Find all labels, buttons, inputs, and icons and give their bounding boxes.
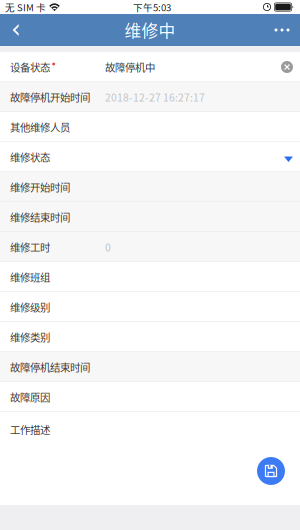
staticText: 维修结束时间 [10,209,70,225]
button[interactable]: 故障原因 [0,382,300,412]
staticText: 故障停机开始时间 [10,89,90,105]
button[interactable]: 故障停机结束时间 [0,352,300,382]
staticText: 故障停机结束时间 [10,359,90,375]
button[interactable]: 维修类别 [0,322,300,352]
staticText: 故障原因 [10,389,50,405]
button[interactable]: 维修工时 [0,232,300,262]
button[interactable]: 故障停机开始时间 [0,82,300,112]
staticText: 维修级别 [10,299,50,315]
staticText: 2018-12-27 16:27:17 [105,89,205,105]
button[interactable]: 维修结束时间 [0,202,300,232]
staticText: 维修中 [124,18,175,42]
button[interactable]: 维修级别 [0,292,300,322]
staticText: 下午5:03 [133,0,171,14]
staticText: 维修班组 [10,269,50,285]
staticText: 维修状态 [10,149,50,165]
button[interactable]: 维修状态 [0,142,300,172]
button[interactable]: 维修班组 [0,262,300,292]
staticText: 其他维修人员 [10,119,70,135]
staticText: 设备状态 [10,59,50,75]
staticText: 工作描述 [10,422,50,437]
button[interactable]: 更多 [264,14,300,46]
button[interactable]: 保存 [257,457,285,485]
staticText: 维修类别 [10,329,50,345]
button[interactable]: 维修开始时间 [0,172,300,202]
staticText: 无 SIM 卡 [5,0,46,14]
button[interactable]: 返回 [0,14,33,46]
staticText: 维修工时 [10,239,50,255]
staticText: 故障停机中 [105,59,155,75]
button[interactable]: 设备状态 [0,52,300,82]
staticText: 维修开始时间 [10,179,70,195]
staticText: 0 [105,239,111,255]
button[interactable]: 其他维修人员 [0,112,300,142]
